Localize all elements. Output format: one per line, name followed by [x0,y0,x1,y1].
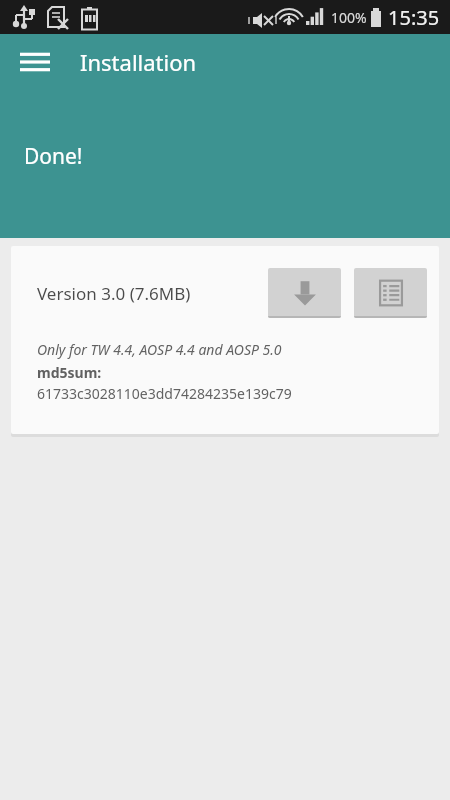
staticText: 61733c3028110e3dd74284235e139c79 [37,384,292,403]
button[interactable]: Download [268,268,341,318]
button[interactable]: Changelog [354,268,427,318]
staticText: 15:35 [388,4,440,31]
staticText: Installation [80,47,197,77]
staticText: md5sum: [37,363,102,382]
staticText: 100% [331,8,367,27]
staticText: Version 3.0 (7.6MB) [37,282,191,305]
button[interactable]: Open navigation drawer [0,40,70,84]
staticText: Only for TW 4.4, AOSP 4.4 and AOSP 5.0 [37,340,282,359]
staticText: Done! [24,142,83,171]
